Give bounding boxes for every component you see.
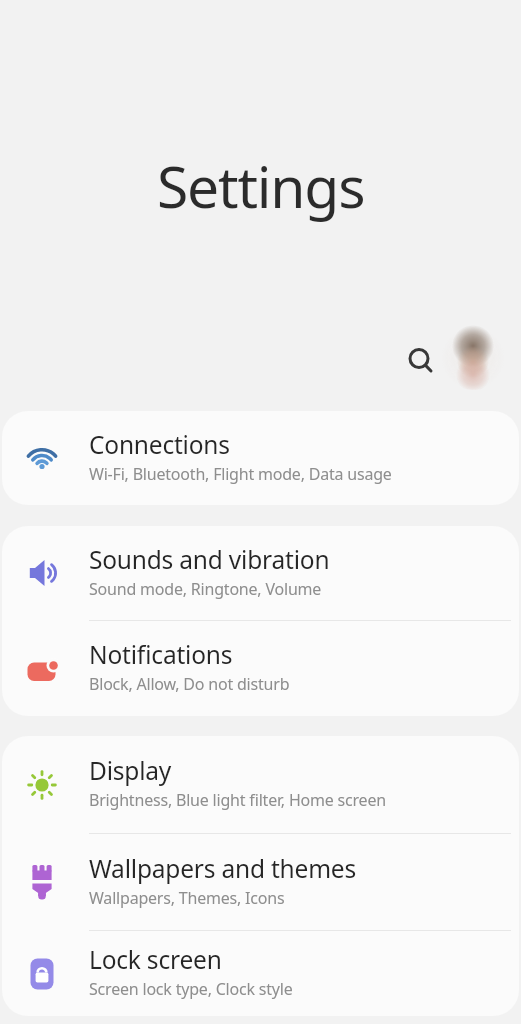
staticText: Wi-Fi, Bluetooth, Flight mode, Data usag… bbox=[89, 463, 392, 485]
staticText: Sound mode, Ringtone, Volume bbox=[89, 578, 322, 600]
button[interactable]: Display bbox=[2, 736, 519, 833]
button[interactable] bbox=[441, 324, 507, 390]
staticText: Display bbox=[89, 754, 172, 787]
staticText: Lock screen bbox=[89, 943, 222, 976]
button[interactable] bbox=[400, 340, 440, 380]
button[interactable]: Connections bbox=[2, 411, 519, 505]
staticText: Brightness, Blue light filter, Home scre… bbox=[89, 789, 386, 811]
button[interactable]: Sounds and vibration bbox=[2, 526, 519, 620]
staticText: Wallpapers, Themes, Icons bbox=[89, 887, 285, 909]
button[interactable]: Wallpapers and themes bbox=[2, 834, 519, 930]
button[interactable]: Notifications bbox=[2, 621, 519, 716]
staticText: Settings bbox=[157, 147, 365, 225]
staticText: Sounds and vibration bbox=[89, 543, 330, 576]
button[interactable]: Lock screen bbox=[2, 931, 519, 1016]
staticText: Notifications bbox=[89, 638, 233, 671]
staticText: Wallpapers and themes bbox=[89, 852, 356, 885]
staticText: Connections bbox=[89, 428, 230, 461]
staticText: Screen lock type, Clock style bbox=[89, 978, 293, 1000]
staticText: Block, Allow, Do not disturb bbox=[89, 673, 290, 695]
